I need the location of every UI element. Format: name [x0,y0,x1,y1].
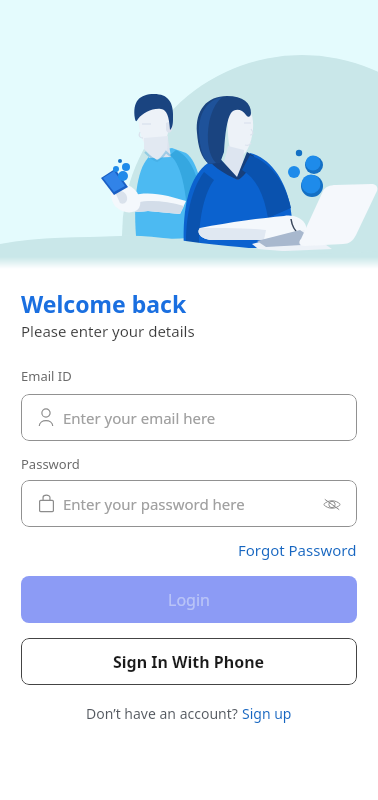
staticText: Sign In With Phone [113,651,265,673]
button[interactable]: Forgot Password [238,540,357,560]
button[interactable]: Enter your email here [21,394,357,441]
button[interactable]: Sign up [242,704,292,723]
staticText: Email ID [21,367,72,385]
staticText: Forgot Password [238,540,357,560]
staticText: Please enter your details [21,321,195,341]
staticText: Login [168,589,210,611]
staticText: Sign up [242,704,292,723]
button[interactable]: Login [21,576,357,623]
staticText: Password [21,455,80,473]
button[interactable]: Show password [319,491,345,517]
staticText: Enter your email here [63,408,216,428]
staticText: Welcome back [21,288,187,319]
staticText: Don’t have an account? [86,704,242,723]
button[interactable]: Sign In With Phone [21,638,357,685]
button[interactable]: Enter your password here [21,480,357,527]
staticText: Enter your password here [63,494,245,514]
